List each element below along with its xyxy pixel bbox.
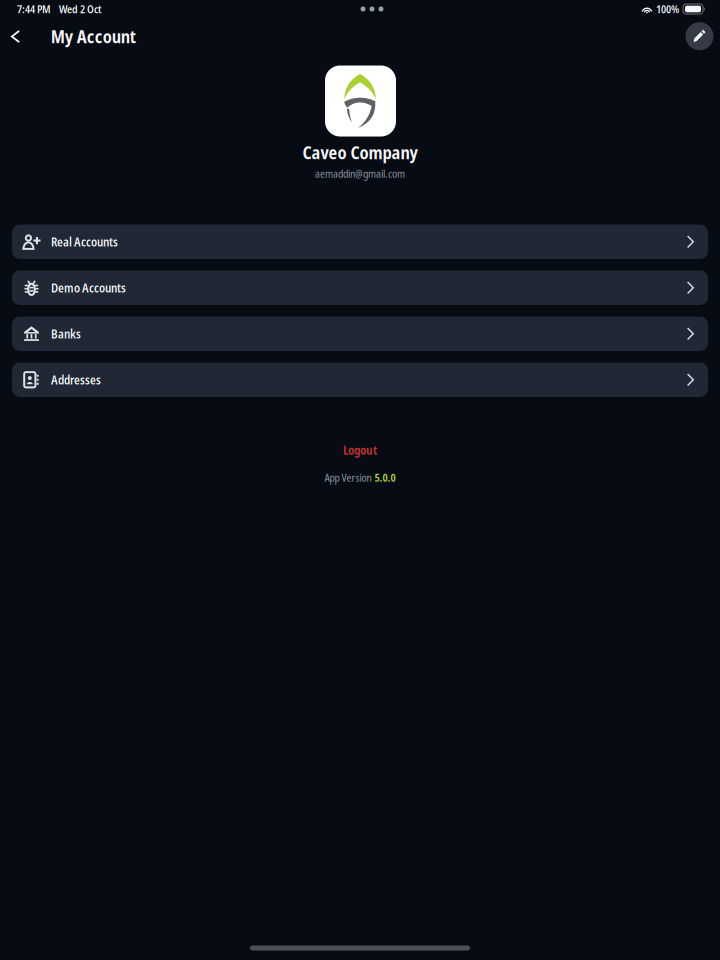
button[interactable]: Back <box>0 21 30 51</box>
staticText: Real Accounts <box>51 234 118 250</box>
staticText: Banks <box>51 326 81 342</box>
staticText: Demo Accounts <box>51 280 126 296</box>
staticText: Addresses <box>51 372 101 388</box>
staticText: Wed 2 Oct <box>59 2 102 16</box>
button[interactable]: Logout <box>315 437 405 463</box>
staticText: 100% <box>656 2 679 16</box>
button[interactable]: Real Accounts <box>12 224 708 259</box>
button[interactable]: Banks <box>12 316 708 351</box>
staticText: Caveo Company <box>302 141 417 164</box>
staticText: 5.0.0 <box>374 470 395 485</box>
staticText: App Version <box>324 470 371 485</box>
staticText: aemaddin@gmail.com <box>315 166 405 181</box>
staticText: My Account <box>51 25 136 48</box>
button[interactable]: Demo Accounts <box>12 270 708 305</box>
button[interactable]: Addresses <box>12 362 708 397</box>
staticText: Logout <box>343 442 377 458</box>
staticText: 7:44 PM <box>17 2 51 16</box>
button[interactable]: Edit profile <box>685 22 713 50</box>
